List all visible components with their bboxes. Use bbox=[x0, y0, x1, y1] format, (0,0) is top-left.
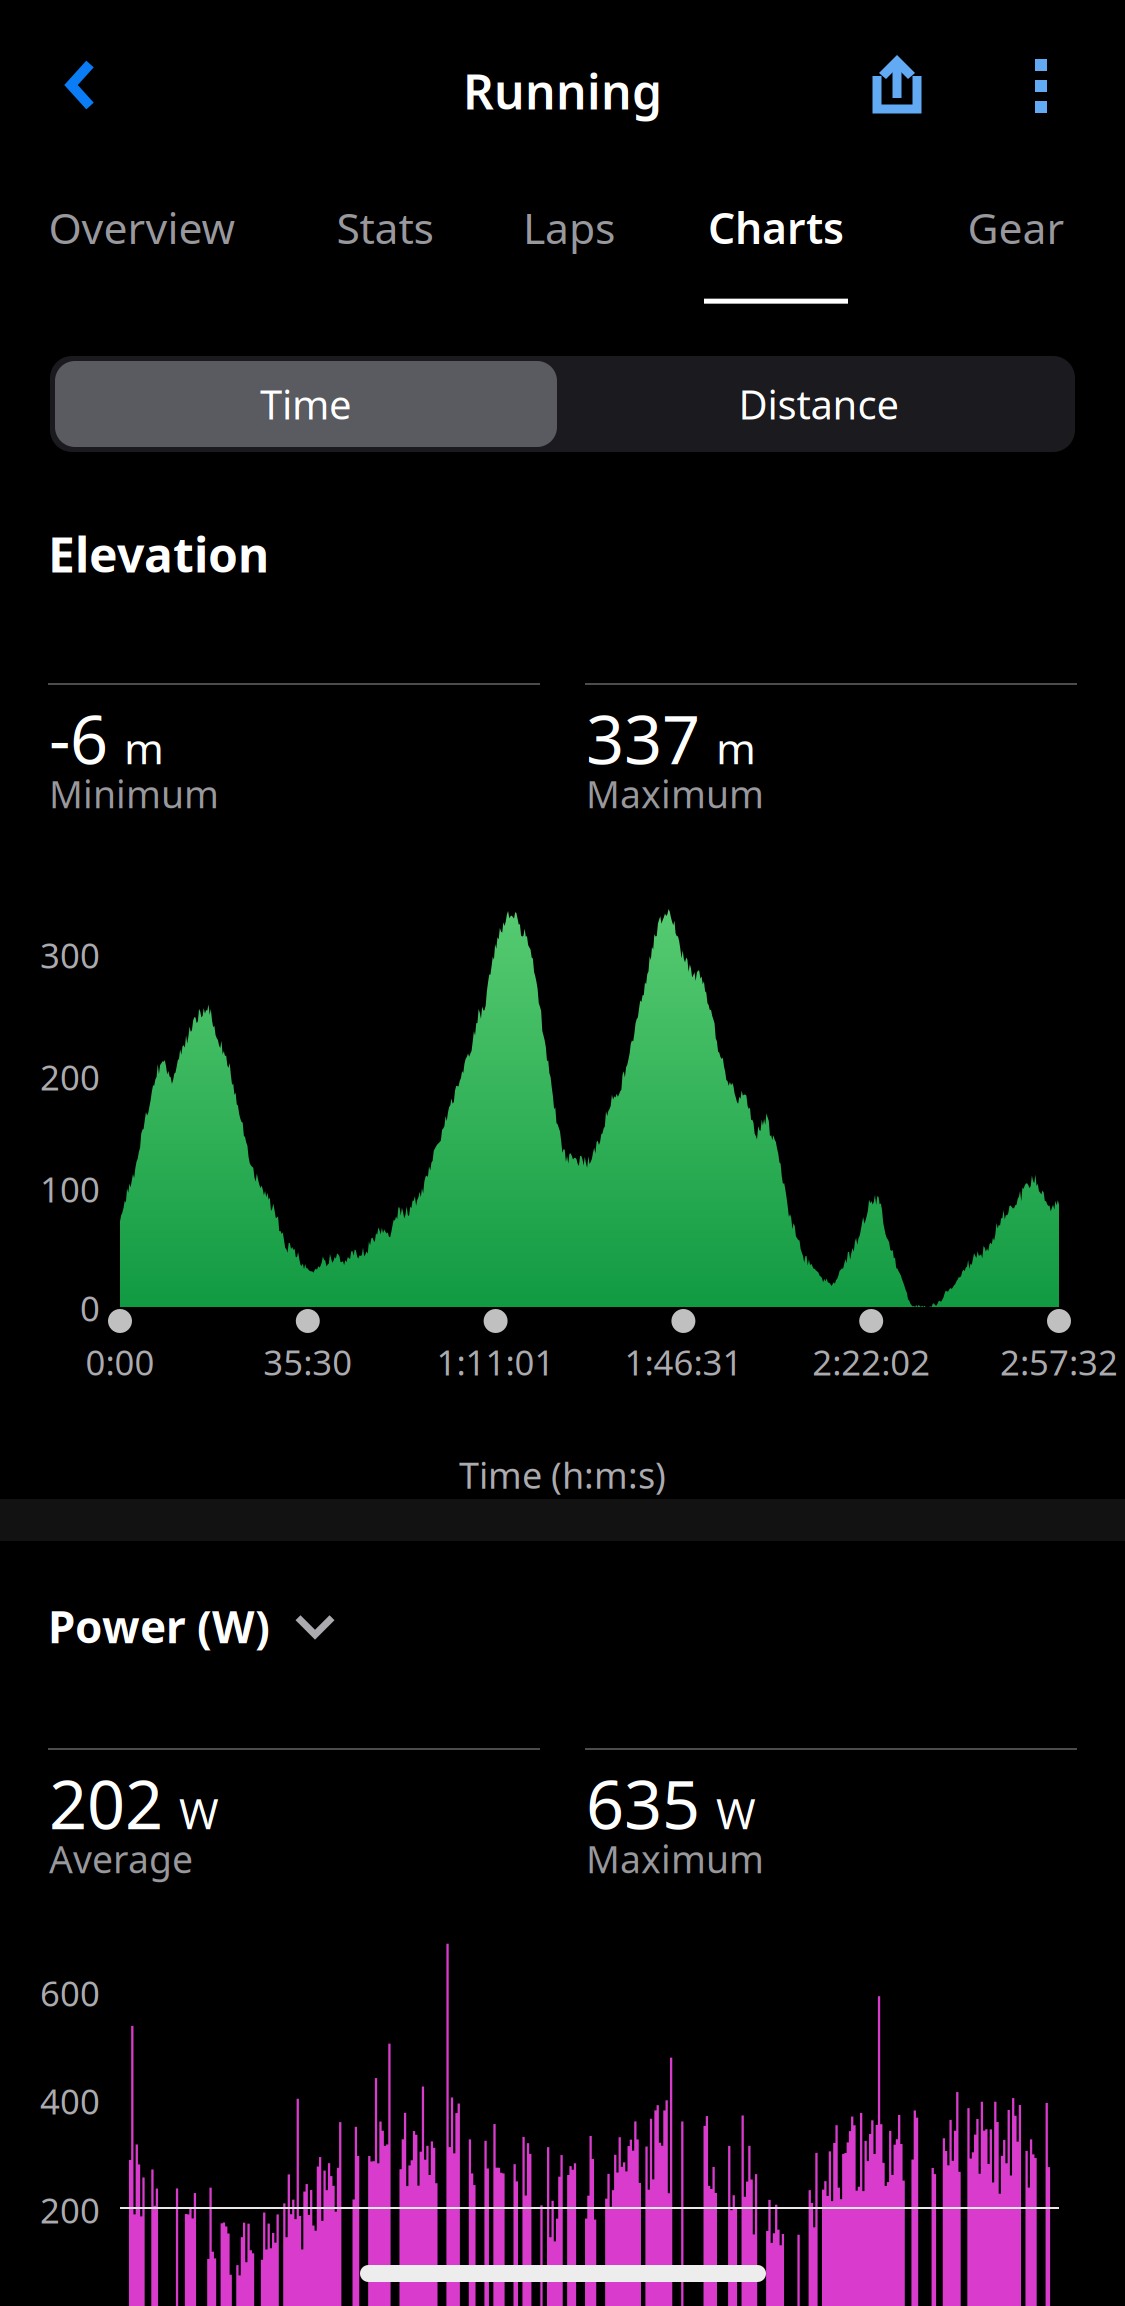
staticText: 400 bbox=[40, 2078, 100, 2124]
button[interactable]: Laps bbox=[479, 199, 659, 304]
staticText: Gear bbox=[967, 199, 1064, 256]
staticText: W bbox=[716, 1784, 756, 1841]
staticText: Maximum bbox=[586, 769, 764, 819]
staticText: 1:11:01 bbox=[437, 1339, 555, 1385]
staticText: Stats bbox=[336, 199, 433, 256]
button[interactable]: More options bbox=[995, 29, 1087, 143]
button[interactable]: Overview bbox=[22, 199, 262, 304]
staticText: m bbox=[716, 719, 756, 776]
button[interactable]: Time bbox=[50, 356, 562, 452]
staticText: 300 bbox=[40, 932, 100, 978]
staticText: W bbox=[179, 1784, 219, 1841]
staticText: Distance bbox=[738, 377, 899, 430]
staticText: 0 bbox=[80, 1285, 100, 1331]
staticText: Time (h:m:s) bbox=[459, 1451, 666, 1499]
staticText: 2:57:32 bbox=[1000, 1339, 1118, 1385]
button[interactable]: Charts bbox=[681, 199, 871, 304]
button[interactable]: Distance bbox=[563, 356, 1075, 452]
staticText: Laps bbox=[523, 199, 615, 256]
staticText: 200 bbox=[40, 1054, 100, 1100]
staticText: 635 bbox=[586, 1759, 700, 1847]
staticText: 35:30 bbox=[263, 1339, 352, 1385]
staticText: 202 bbox=[49, 1759, 163, 1847]
button[interactable]: Share bbox=[842, 26, 952, 140]
staticText: 1:46:31 bbox=[624, 1339, 742, 1385]
staticText: Power (W) bbox=[48, 1597, 270, 1655]
staticText: -6 bbox=[49, 694, 108, 782]
button[interactable]: Back bbox=[30, 29, 131, 142]
staticText: Minimum bbox=[49, 769, 219, 819]
staticText: Running bbox=[463, 59, 662, 123]
staticText: 0:00 bbox=[85, 1339, 154, 1385]
staticText: 600 bbox=[40, 1970, 100, 2016]
staticText: 200 bbox=[40, 2187, 100, 2233]
staticText: Maximum bbox=[586, 1834, 764, 1884]
staticText: 100 bbox=[40, 1166, 100, 1212]
button[interactable]: Power (W) bbox=[48, 1597, 336, 1655]
staticText: 337 bbox=[586, 694, 700, 782]
staticText: Elevation bbox=[48, 522, 269, 586]
button[interactable]: Stats bbox=[295, 199, 475, 304]
button[interactable]: Gear bbox=[926, 199, 1106, 304]
staticText: Average bbox=[49, 1834, 193, 1884]
staticText: m bbox=[124, 719, 164, 776]
staticText: 2:22:02 bbox=[812, 1339, 930, 1385]
staticText: Time bbox=[260, 377, 352, 430]
staticText: Overview bbox=[48, 199, 235, 256]
staticText: Charts bbox=[708, 199, 844, 256]
